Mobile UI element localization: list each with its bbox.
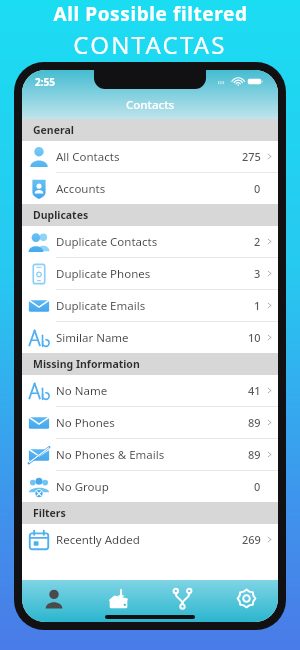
- staticText: 41: [248, 383, 261, 398]
- staticText: 275: [242, 149, 261, 164]
- staticText: 269: [242, 532, 261, 547]
- staticText: General: [33, 123, 74, 137]
- staticText: Duplicate Phones: [56, 266, 254, 282]
- staticText: 0: [254, 181, 261, 196]
- staticText: 89: [248, 415, 261, 430]
- button[interactable]: Import contacts: [86, 580, 150, 617]
- button[interactable]: Duplicate Phones: [22, 258, 278, 290]
- staticText: Contacts: [126, 97, 175, 113]
- staticText: 2: [254, 234, 261, 249]
- staticText: CONTACTAS: [73, 28, 227, 61]
- staticText: Filters: [33, 506, 66, 520]
- staticText: Similar Name: [56, 330, 248, 346]
- staticText: 1: [254, 298, 261, 313]
- staticText: Missing Information: [33, 357, 140, 371]
- button[interactable]: Recently Added: [22, 524, 278, 555]
- button[interactable]: No Name: [22, 375, 278, 407]
- button[interactable]: Merge duplicates: [150, 580, 214, 617]
- button[interactable]: Duplicate Emails: [22, 290, 278, 322]
- staticText: No Phones: [56, 415, 248, 431]
- staticText: Accounts: [56, 181, 254, 197]
- button[interactable]: All Contacts: [22, 141, 278, 173]
- staticText: Duplicate Emails: [56, 298, 254, 314]
- staticText: No Group: [56, 479, 254, 495]
- button[interactable]: Contacts: [22, 580, 86, 617]
- staticText: 10: [248, 330, 261, 345]
- button[interactable]: Accounts: [22, 173, 278, 204]
- staticText: 89: [248, 447, 261, 462]
- staticText: 3: [254, 266, 261, 281]
- button[interactable]: Duplicate Contacts: [22, 226, 278, 258]
- button[interactable]: No Phones & Emails: [22, 439, 278, 471]
- staticText: 0: [254, 479, 261, 494]
- staticText: All Contacts: [56, 149, 242, 165]
- button[interactable]: Settings: [214, 580, 278, 617]
- button[interactable]: No Phones: [22, 407, 278, 439]
- staticText: Recently Added: [56, 532, 242, 548]
- staticText: Duplicate Contacts: [56, 234, 254, 250]
- button[interactable]: Similar Name: [22, 322, 278, 353]
- staticText: No Name: [56, 383, 248, 399]
- staticText: Duplicates: [33, 208, 89, 222]
- staticText: No Phones & Emails: [56, 447, 248, 463]
- staticText: All Possible filtered: [53, 1, 248, 27]
- button[interactable]: No Group: [22, 471, 278, 502]
- staticText: 2:55: [35, 75, 55, 89]
